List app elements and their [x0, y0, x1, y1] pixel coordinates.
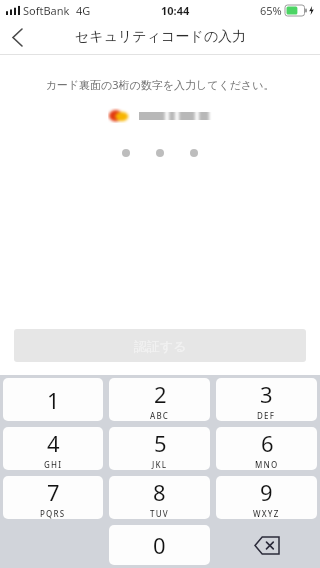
staticText: SoftBank: [23, 3, 70, 18]
button[interactable]: 2: [109, 378, 210, 421]
button[interactable]: 7: [3, 476, 103, 519]
button[interactable]: 6: [216, 427, 317, 470]
staticText: 0: [153, 530, 166, 560]
staticText: 7: [47, 477, 60, 507]
staticText: 2: [154, 379, 167, 409]
staticText: TUV: [150, 508, 169, 519]
staticText: 1: [47, 385, 60, 415]
staticText: 6: [261, 428, 274, 458]
staticText: 4G: [76, 3, 91, 18]
staticText: ABC: [150, 410, 170, 421]
button[interactable]: 3: [216, 378, 317, 421]
staticText: MNO: [255, 459, 279, 470]
staticText: 10:44: [161, 3, 190, 18]
staticText: 9: [260, 477, 273, 507]
staticText: セキュリティコードの入力: [75, 28, 246, 46]
button[interactable]: 1: [3, 378, 103, 421]
staticText: JKL: [152, 459, 168, 470]
button[interactable]: 4: [3, 427, 103, 470]
staticText: カード裏面の3桁の数字を入力してください。: [45, 77, 275, 92]
staticText: 5: [154, 428, 167, 458]
staticText: WXYZ: [253, 508, 280, 519]
button[interactable]: 9: [216, 476, 317, 519]
staticText: 65%: [260, 3, 282, 18]
button[interactable]: 0: [109, 525, 210, 565]
staticText: DEF: [257, 410, 276, 421]
button[interactable]: Backspace: [213, 522, 320, 568]
staticText: 4: [47, 428, 60, 458]
staticText: 3: [260, 379, 273, 409]
button[interactable]: 8: [109, 476, 210, 519]
staticText: PQRS: [40, 508, 66, 519]
staticText: 認証する: [134, 338, 187, 354]
button[interactable]: Back: [0, 20, 34, 54]
staticText: 8: [153, 477, 166, 507]
staticText: GHI: [44, 459, 63, 470]
button[interactable]: 5: [109, 427, 210, 470]
